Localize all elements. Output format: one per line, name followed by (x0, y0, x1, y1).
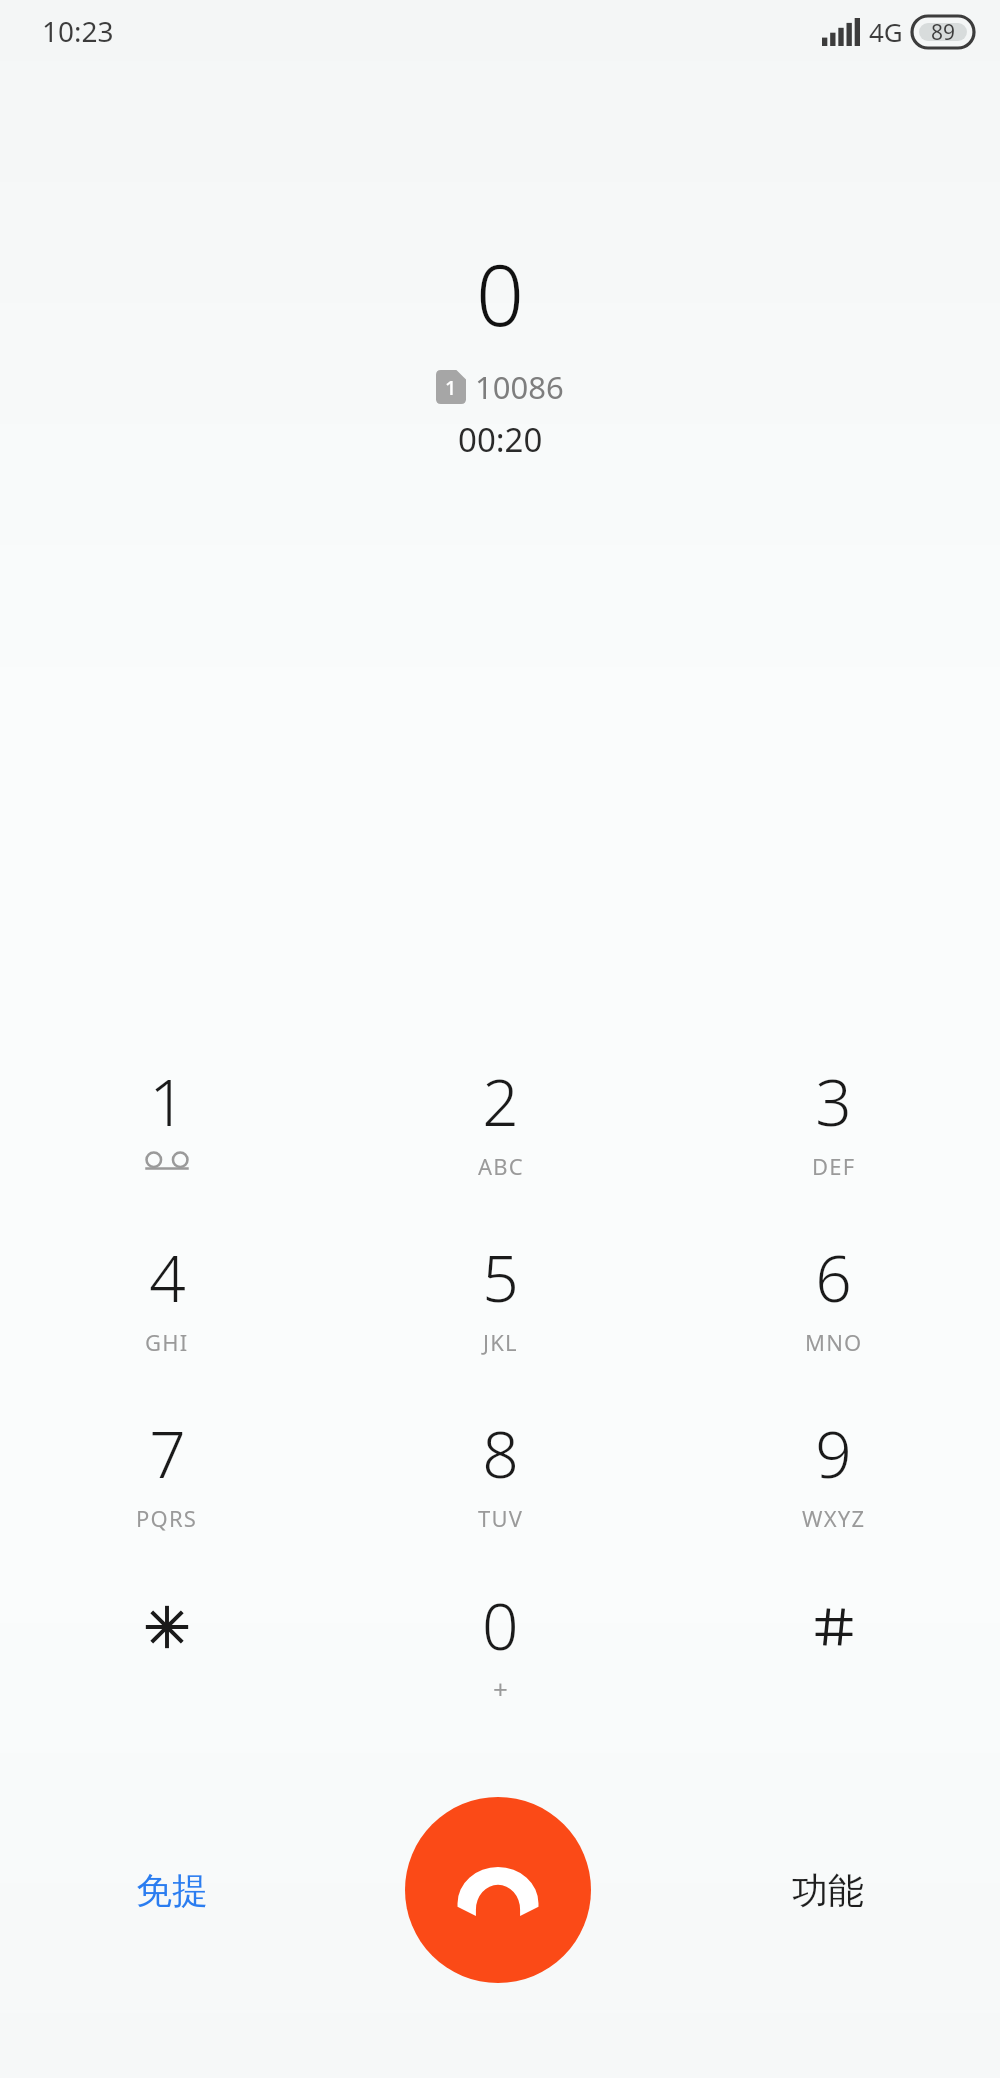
staticText: 功能 (792, 1868, 864, 1913)
staticText: 0 (482, 1582, 519, 1669)
button[interactable]: 0 (334, 1582, 667, 1714)
staticText: 10086 (475, 366, 564, 408)
button[interactable]: Star (0, 1582, 334, 1714)
button[interactable]: 4 (0, 1234, 334, 1366)
staticText: 7 (149, 1410, 186, 1497)
staticText: 2 (482, 1058, 519, 1145)
staticText: 0 (476, 236, 524, 350)
staticText: 5 (482, 1234, 519, 1321)
button[interactable]: 7 (0, 1410, 334, 1542)
staticText: 10:23 (42, 12, 114, 50)
staticText: DEF (812, 1151, 856, 1181)
staticText: 免提 (136, 1868, 208, 1913)
staticText: GHI (145, 1327, 189, 1357)
staticText: MNO (805, 1327, 863, 1357)
staticText: PQRS (136, 1503, 198, 1533)
button[interactable]: End call (405, 1797, 591, 1983)
staticText: 4 (149, 1234, 186, 1321)
staticText: 8 (482, 1410, 519, 1497)
staticText: WXYZ (802, 1503, 866, 1533)
button[interactable]: 免提 (122, 1856, 222, 1925)
button[interactable]: 1 (0, 1058, 334, 1190)
staticText: ABC (478, 1151, 524, 1181)
button[interactable]: 8 (334, 1410, 667, 1542)
button[interactable]: Pound (667, 1582, 1000, 1714)
staticText: 9 (815, 1410, 852, 1497)
button[interactable]: 3 (667, 1058, 1000, 1190)
staticText: 4G (869, 14, 903, 49)
staticText: 1 (445, 374, 457, 401)
staticText: 89 (931, 18, 956, 47)
button[interactable]: 9 (667, 1410, 1000, 1542)
button[interactable]: 2 (334, 1058, 667, 1190)
staticText: 00:20 (458, 417, 543, 462)
button[interactable]: 5 (334, 1234, 667, 1366)
staticText: 6 (815, 1234, 852, 1321)
staticText: + (493, 1671, 508, 1706)
staticText: TUV (478, 1503, 524, 1533)
staticText: JKL (483, 1327, 518, 1357)
staticText: 1 (149, 1058, 186, 1145)
button[interactable]: 6 (667, 1234, 1000, 1366)
staticText: 3 (815, 1058, 852, 1145)
button[interactable]: 功能 (778, 1856, 878, 1925)
